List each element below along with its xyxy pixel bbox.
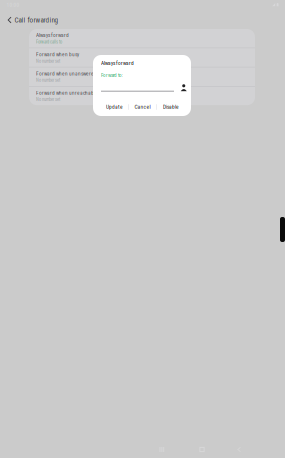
button[interactable]: Disable [157,102,185,112]
button[interactable]: Choose contact [180,84,187,91]
button[interactable]: Update [101,102,128,112]
button[interactable]: Edge panel [280,217,285,242]
button[interactable]: Back [5,13,14,27]
staticText: Cancel [134,104,150,110]
staticText: Forward when unanswered [36,70,97,77]
button[interactable]: Forward when unreachable [29,87,255,105]
staticText: No number set [36,58,60,64]
staticText: Update [106,104,123,110]
staticText: No number set [36,78,60,83]
staticText: No number set [36,97,60,102]
staticText: Call forwarding [14,16,58,24]
staticText: Forward to: [101,72,123,78]
button[interactable]: Forward when unanswered [29,67,255,86]
staticText: Disable [163,104,179,110]
staticText: Always forward [101,60,134,66]
staticText: Forward calls to [36,39,62,44]
button[interactable]: Always forward [29,29,255,48]
button[interactable]: Forward when busy [29,48,255,67]
staticText: Forward when unreachable [36,90,98,96]
button[interactable]: Cancel [129,102,156,112]
staticText: Always forward [36,32,69,38]
staticText: Forward when busy [36,51,79,57]
